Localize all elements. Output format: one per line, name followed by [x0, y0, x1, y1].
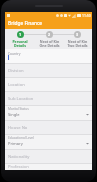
staticText: Profession	[8, 164, 29, 170]
staticText: Next of Kin Two Details	[67, 39, 88, 48]
staticText: Nationality	[8, 154, 30, 160]
button[interactable]: Bridge Finance	[5, 18, 92, 29]
button[interactable]: Country	[8, 49, 89, 63]
other: Expand Educational Level	[86, 142, 89, 145]
staticText: 2	[48, 32, 51, 37]
button[interactable]: Nationality	[8, 150, 89, 163]
button[interactable]: Educational Level	[8, 135, 89, 149]
staticText: Location	[8, 82, 25, 88]
staticText: Division	[8, 68, 24, 74]
button[interactable]: House No	[8, 121, 89, 134]
staticText: Next of Kin One Details	[39, 39, 60, 48]
button[interactable]: Marital Status	[8, 106, 89, 120]
button[interactable]: Sub Location	[8, 92, 89, 105]
button[interactable]: Location	[8, 78, 89, 91]
staticText: House No	[8, 125, 28, 131]
other: Expand Marital Status	[86, 113, 89, 116]
staticText: 1	[19, 32, 22, 37]
button[interactable]: 3	[63, 31, 91, 48]
staticText: Single	[8, 112, 20, 117]
button[interactable]: Profession	[8, 164, 89, 170]
staticText: Sub Location	[8, 96, 34, 102]
staticText: 3	[76, 32, 79, 37]
staticText: Bridge Finance	[8, 20, 43, 27]
staticText: 11:50	[82, 13, 91, 18]
staticText: Educational Level	[8, 136, 34, 140]
staticText: Country	[8, 51, 21, 55]
staticText: Primary	[8, 141, 23, 146]
button[interactable]: 2	[35, 31, 63, 48]
button[interactable]: Division	[8, 64, 89, 77]
staticText: Personal Details	[12, 39, 28, 48]
staticText: Marital Status	[8, 107, 29, 111]
button[interactable]: 1	[6, 31, 34, 48]
